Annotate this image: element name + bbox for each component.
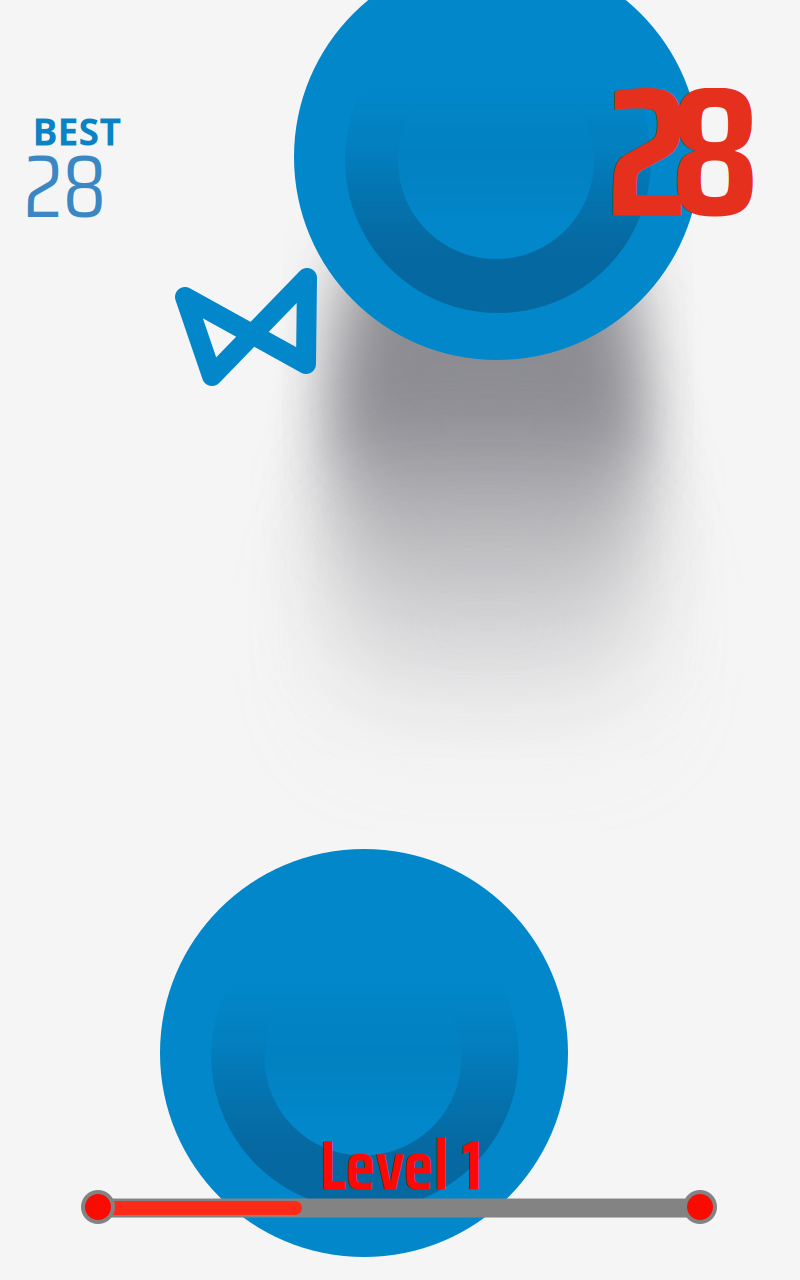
staticText: 28 — [23, 116, 106, 256]
staticText: BEST — [32, 106, 121, 156]
staticText: 28 — [606, 8, 760, 296]
staticText: Level 1 — [319, 1110, 482, 1219]
